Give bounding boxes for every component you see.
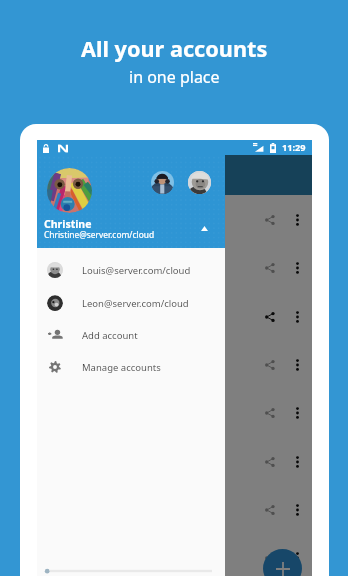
staticText: All your accounts [81,34,268,64]
button[interactable]: Share [259,547,281,569]
button[interactable]: More options [286,499,308,521]
button[interactable]: More options [286,451,308,473]
button[interactable]: Leon@server.com/cloud [37,287,225,319]
button[interactable]: Share [259,402,281,424]
button[interactable]: More options [286,257,308,279]
button[interactable]: Share [259,451,281,473]
staticText: Louis@server.com/cloud [82,264,191,277]
staticText: Leon@server.com/cloud [82,297,189,310]
staticText: 11:29 [282,141,306,154]
button[interactable]: Add [263,549,302,576]
button[interactable]: Add account [37,319,225,351]
button[interactable]: More options [286,209,308,231]
button[interactable]: Share [259,354,281,376]
staticText: Manage accounts [82,361,161,374]
staticText: Add account [82,329,138,342]
staticText: Christine [44,217,92,231]
button[interactable]: Share [259,209,281,231]
button[interactable]: Manage accounts [37,351,225,383]
staticText: Christine@server.com/cloud [44,229,155,240]
button[interactable]: More options [286,402,308,424]
button[interactable]: Louis@server.com/cloud [37,254,225,286]
button[interactable]: Share [259,499,281,521]
button[interactable]: Share [259,306,281,328]
button[interactable]: More options [286,354,308,376]
button[interactable]: More options [286,306,308,328]
staticText: in one place [129,66,220,88]
button[interactable]: Share [259,257,281,279]
button[interactable]: More options [286,547,308,569]
